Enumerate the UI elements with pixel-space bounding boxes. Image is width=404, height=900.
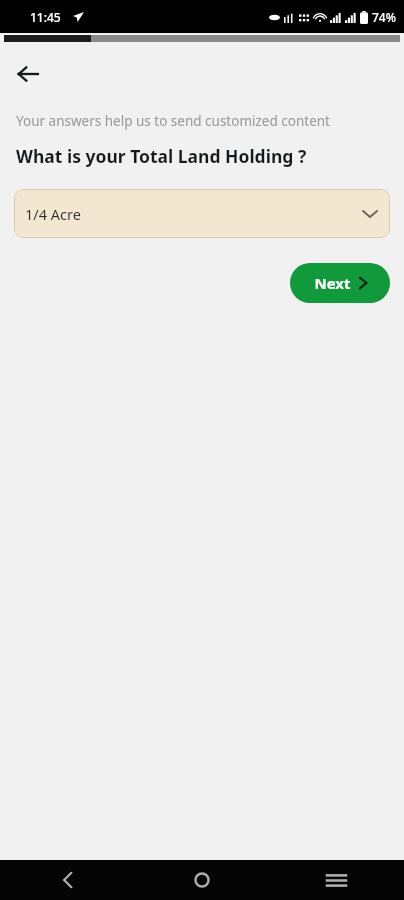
staticText: 1/4 Acre [25, 204, 81, 224]
staticText: Next [314, 273, 351, 293]
button[interactable]: Back [8, 54, 48, 94]
staticText: 11:45 [30, 9, 61, 25]
button[interactable]: Recent apps [269, 860, 404, 900]
staticText: What is your Total Land Holding ? [16, 144, 307, 168]
staticText: 74% [372, 9, 396, 25]
button[interactable]: Home [134, 860, 269, 900]
button[interactable]: 1/4 Acre [14, 189, 390, 238]
staticText: Your answers help us to send customized … [16, 112, 330, 130]
button[interactable]: Back [0, 860, 134, 900]
button[interactable]: Next [290, 263, 390, 303]
